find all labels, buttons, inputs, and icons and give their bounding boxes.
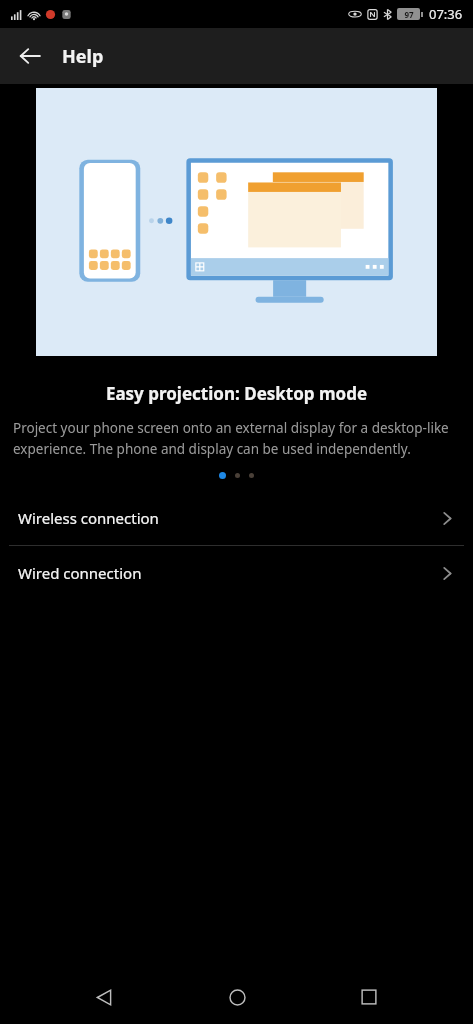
button[interactable]: Back — [8, 34, 52, 78]
button[interactable]: Home — [209, 970, 265, 1024]
staticText: Help — [62, 44, 104, 69]
button[interactable]: Wired connection — [0, 546, 473, 600]
staticText: Wired connection — [18, 563, 142, 583]
staticText: Project your phone screen onto an extern… — [13, 419, 451, 458]
button[interactable]: Recent apps — [341, 970, 397, 1024]
staticText: Easy projection: Desktop mode — [0, 382, 473, 405]
button[interactable]: Back — [76, 970, 132, 1024]
staticText: 97 — [404, 9, 414, 20]
button[interactable]: Wireless connection — [0, 491, 473, 545]
staticText: 07:36 — [429, 5, 463, 23]
staticText: Wireless connection — [18, 508, 159, 528]
